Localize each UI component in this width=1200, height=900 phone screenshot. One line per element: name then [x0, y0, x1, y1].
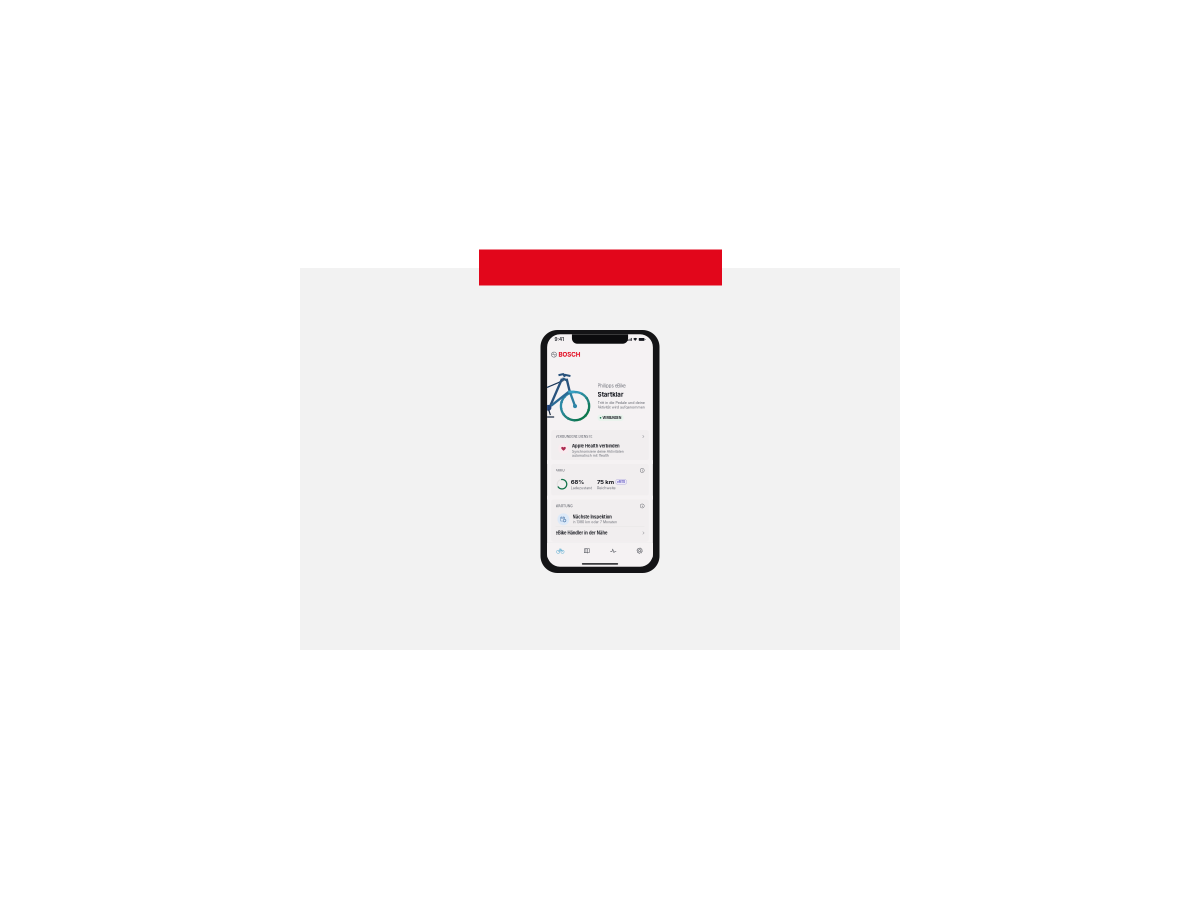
staticText: VERBUNDENE DIENSTE — [436, 392, 572, 406]
button[interactable]: AKKU — [405, 500, 795, 617]
staticText: Apple Health verbinden — [497, 425, 672, 443]
staticText: Tritt in die Pedale und deine Aktivität … — [591, 266, 766, 299]
staticText: VERBUNDEN — [609, 323, 679, 337]
button[interactable]: WARTUNG — [420, 631, 780, 729]
staticText: WARTUNG — [436, 648, 499, 662]
staticText: Synchronisiere deine Aktivitäten automat… — [497, 446, 687, 477]
staticText: 68% — [492, 553, 542, 579]
button[interactable]: VERBUNDENE DIENSTE — [405, 375, 795, 486]
staticText: Startklar — [591, 230, 686, 257]
staticText: 75 km — [589, 553, 652, 579]
